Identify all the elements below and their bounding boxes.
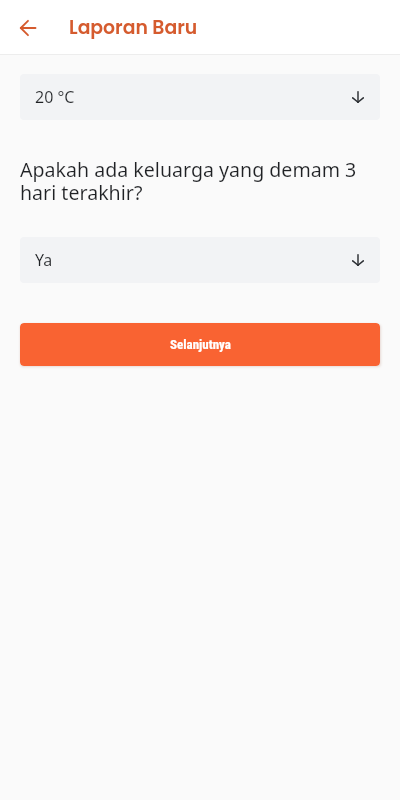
button[interactable]: Back [7, 7, 48, 48]
button[interactable]: Selanjutnya [20, 323, 380, 366]
staticText: Selanjutnya [170, 337, 231, 352]
other: Expand [348, 250, 368, 270]
staticText: Laporan Baru [69, 14, 198, 40]
button[interactable]: Ya [20, 237, 380, 283]
button[interactable]: 20 °C [20, 74, 380, 120]
staticText: 20 °C [35, 86, 75, 108]
other: Expand [348, 87, 368, 107]
staticText: Apakah ada keluarga yang demam 3 hari te… [20, 156, 380, 206]
staticText: Ya [35, 249, 53, 271]
